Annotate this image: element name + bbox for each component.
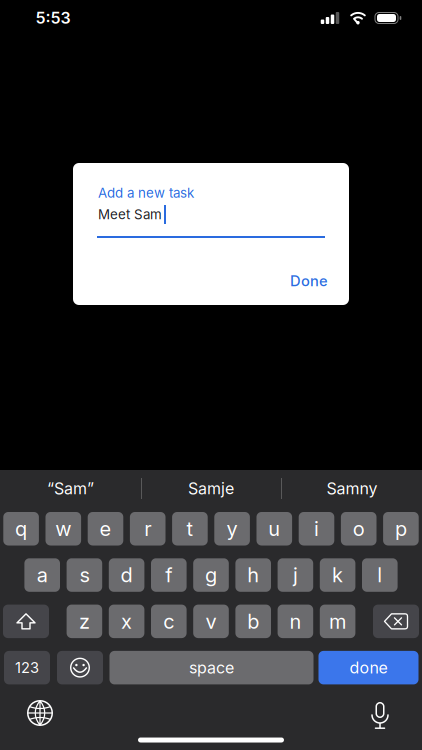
button[interactable]: e bbox=[88, 512, 123, 545]
staticText: space bbox=[189, 658, 234, 677]
button[interactable]: i bbox=[299, 512, 334, 545]
button[interactable]: q bbox=[3, 512, 39, 545]
staticText: v bbox=[205, 610, 216, 633]
button[interactable]: “Sam” bbox=[1, 473, 139, 503]
staticText: w bbox=[55, 517, 71, 541]
button[interactable]: w bbox=[45, 512, 81, 545]
staticText: x bbox=[121, 610, 132, 633]
staticText: e bbox=[99, 517, 111, 541]
button[interactable]: u bbox=[256, 512, 292, 545]
staticText: h bbox=[247, 563, 259, 587]
button[interactable]: space bbox=[109, 651, 313, 684]
button[interactable]: Shift bbox=[3, 605, 49, 638]
staticText: p bbox=[395, 517, 407, 541]
staticText: Done bbox=[290, 272, 328, 290]
staticText: y bbox=[227, 517, 238, 541]
button[interactable]: Next keyboard bbox=[25, 698, 55, 728]
button[interactable]: f bbox=[151, 558, 187, 592]
button[interactable]: Samny bbox=[283, 473, 421, 503]
staticText: 5:53 bbox=[35, 9, 70, 27]
staticText: k bbox=[332, 563, 343, 587]
button[interactable]: Samje bbox=[142, 473, 280, 503]
button[interactable]: done bbox=[318, 651, 418, 684]
button[interactable]: p bbox=[383, 512, 419, 545]
button[interactable]: c bbox=[151, 605, 187, 638]
button[interactable]: r bbox=[130, 512, 165, 545]
button[interactable]: g bbox=[193, 558, 229, 592]
staticText: l bbox=[377, 563, 382, 587]
button[interactable]: Delete bbox=[373, 605, 419, 638]
staticText: f bbox=[165, 563, 172, 587]
button[interactable]: j bbox=[278, 558, 313, 592]
button[interactable]: v bbox=[193, 605, 229, 638]
button[interactable]: t bbox=[172, 512, 208, 545]
button[interactable]: a bbox=[24, 558, 60, 592]
button[interactable]: s bbox=[67, 558, 102, 592]
staticText: d bbox=[121, 563, 133, 587]
button[interactable]: Done bbox=[282, 264, 336, 298]
staticText: 123 bbox=[15, 659, 39, 676]
staticText: r bbox=[144, 517, 151, 541]
button[interactable]: Emoji bbox=[57, 651, 103, 684]
staticText: s bbox=[79, 563, 89, 587]
staticText: m bbox=[329, 610, 346, 633]
staticText: n bbox=[289, 610, 301, 633]
staticText: Samny bbox=[326, 479, 377, 498]
staticText: a bbox=[37, 563, 48, 587]
button[interactable]: l bbox=[362, 558, 398, 592]
button[interactable]: d bbox=[109, 558, 144, 592]
staticText: done bbox=[349, 658, 387, 677]
staticText: t bbox=[186, 517, 193, 541]
staticText: q bbox=[15, 517, 27, 541]
button[interactable]: x bbox=[109, 605, 144, 638]
staticText: Samje bbox=[188, 479, 234, 498]
button[interactable]: o bbox=[341, 512, 376, 545]
staticText: Add a new task bbox=[98, 185, 194, 201]
staticText: b bbox=[247, 610, 259, 633]
button[interactable]: k bbox=[320, 558, 355, 592]
button[interactable]: y bbox=[214, 512, 250, 545]
staticText: o bbox=[353, 517, 365, 541]
button[interactable]: Dictation bbox=[370, 701, 390, 731]
staticText: Meet Sam bbox=[98, 207, 162, 222]
staticText: “Sam” bbox=[47, 479, 94, 498]
button[interactable]: z bbox=[67, 605, 102, 638]
button[interactable]: h bbox=[235, 558, 271, 592]
button[interactable]: m bbox=[320, 605, 355, 638]
button[interactable]: 123 bbox=[4, 651, 50, 684]
button[interactable]: b bbox=[235, 605, 271, 638]
staticText: u bbox=[268, 517, 280, 541]
staticText: c bbox=[163, 610, 174, 633]
staticText: j bbox=[293, 563, 298, 587]
staticText: g bbox=[205, 563, 217, 587]
staticText: z bbox=[79, 610, 90, 633]
button[interactable]: n bbox=[278, 605, 313, 638]
staticText: i bbox=[314, 517, 319, 541]
